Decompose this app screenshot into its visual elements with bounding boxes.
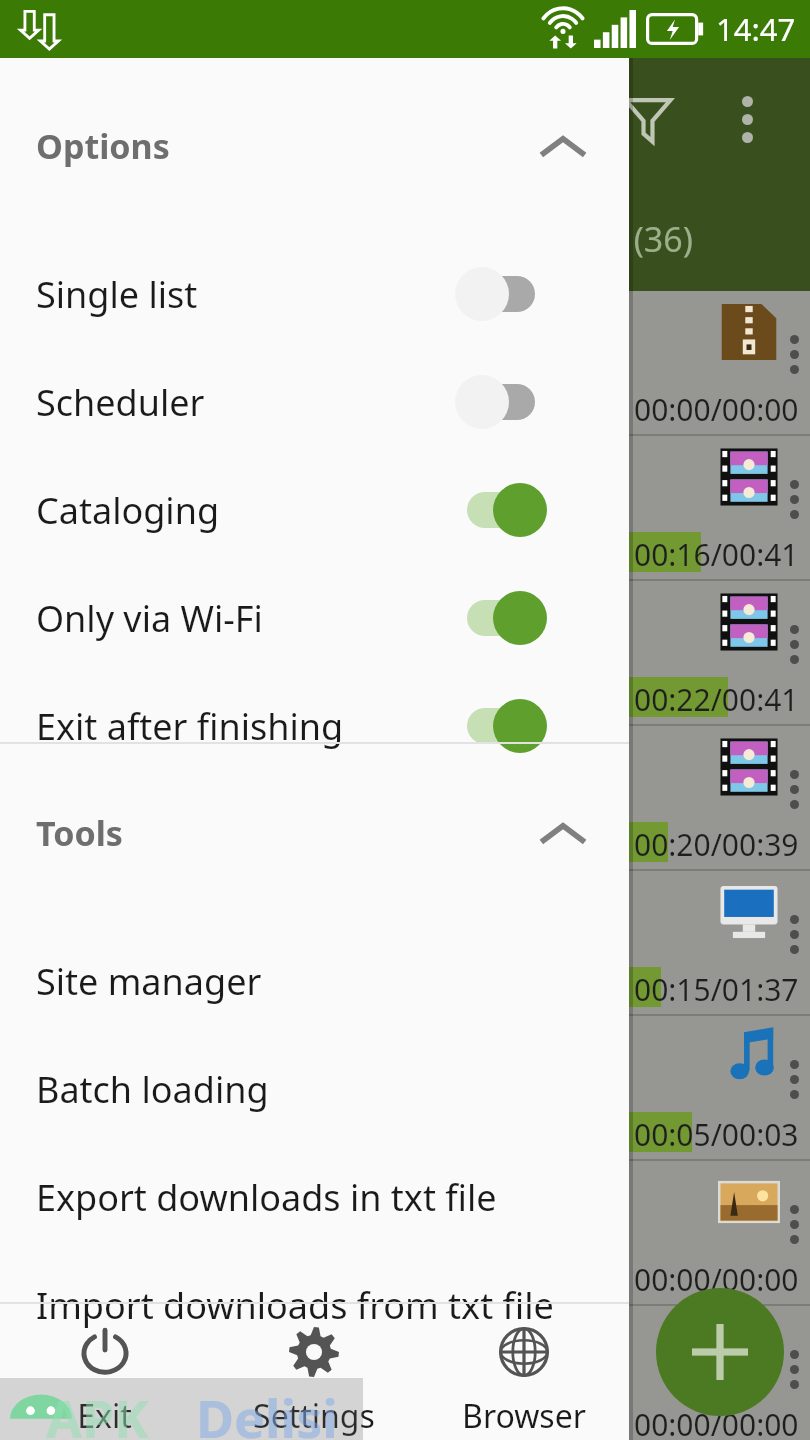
staticText: Batch loading [36, 1065, 269, 1114]
staticText: 00:05/00:03 [634, 1114, 799, 1154]
staticText: Browser [462, 1394, 586, 1438]
staticText: Site manager [36, 957, 262, 1006]
staticText: 00:00/00:00 [634, 389, 799, 429]
button[interactable]: Add download [656, 1288, 784, 1416]
staticText: APK [46, 1382, 149, 1440]
staticText: Single list [36, 270, 198, 319]
button[interactable]: Tools [0, 785, 629, 881]
button[interactable]: Browser [419, 1304, 629, 1440]
staticText: 00:22/00:41 [634, 679, 799, 719]
staticText: Scheduler [36, 378, 205, 427]
button[interactable]: Exit [0, 1304, 209, 1440]
button[interactable]: Export downloads in txt file [0, 1143, 629, 1251]
other: Filter [620, 90, 676, 146]
staticText: 00:00/00:00 [634, 1259, 799, 1299]
staticText: Import downloads from txt file [36, 1281, 554, 1330]
staticText: 00:00/00:00 [634, 1404, 799, 1440]
staticText: Exit after finishing [36, 702, 344, 751]
staticText: Exit [77, 1394, 132, 1438]
button[interactable]: Only via Wi-Fi [0, 564, 629, 672]
staticText: Settings [253, 1394, 375, 1438]
staticText: 00:20/00:39 [634, 824, 799, 864]
staticText: Tools [36, 810, 123, 856]
button[interactable]: Import downloads from txt file [0, 1251, 629, 1359]
staticText: D (36) [600, 216, 693, 262]
other: More options [742, 96, 753, 143]
staticText: Export downloads in txt file [36, 1173, 497, 1222]
staticText: Only via Wi-Fi [36, 594, 263, 643]
other: Collapse Tools [541, 820, 585, 846]
button[interactable]: Options [0, 98, 629, 194]
button[interactable]: Batch loading [0, 1035, 629, 1143]
button[interactable]: Exit after finishing [0, 672, 629, 780]
staticText: 00:15/01:37 [634, 969, 799, 1009]
staticText: 00:16/00:41 [634, 534, 799, 574]
staticText: 14:47 [716, 8, 796, 50]
staticText: Options [36, 123, 170, 169]
staticText: Delisi [196, 1382, 338, 1440]
staticText: Cataloging [36, 486, 220, 535]
button[interactable]: Scheduler [0, 348, 629, 456]
button[interactable]: Settings [209, 1304, 419, 1440]
button[interactable]: Cataloging [0, 456, 629, 564]
button[interactable]: Site manager [0, 927, 629, 1035]
other: Collapse Options [541, 133, 585, 159]
button[interactable]: Single list [0, 240, 629, 348]
